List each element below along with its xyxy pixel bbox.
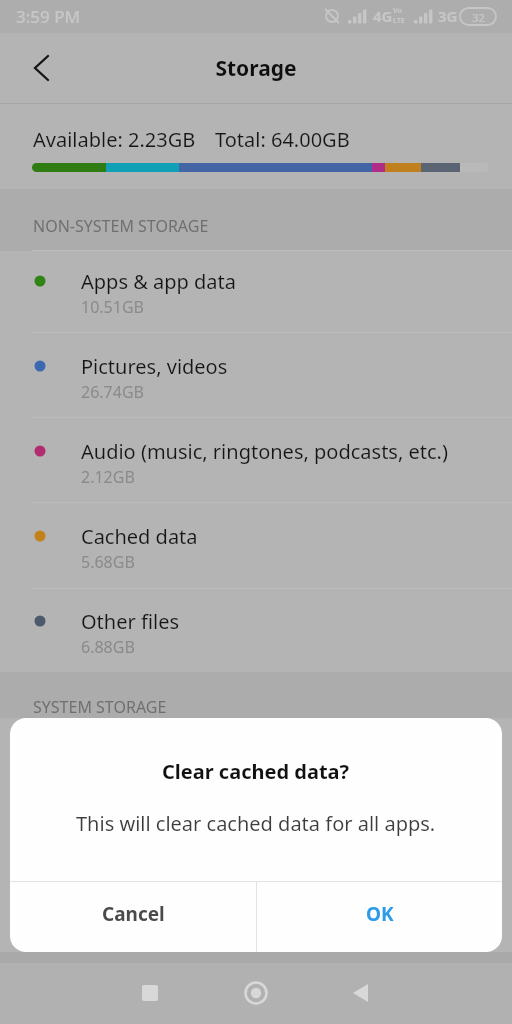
- staticText: Cached data: [81, 523, 198, 550]
- staticText: 4G: [373, 6, 393, 26]
- button[interactable]: Apps & app data: [0, 251, 512, 336]
- staticText: 2.12GB: [81, 466, 135, 488]
- button[interactable]: Cancel: [10, 879, 256, 949]
- staticText: Vo LTE: [393, 6, 405, 26]
- staticText: OK: [366, 901, 394, 927]
- staticText: 6.88GB: [81, 636, 135, 658]
- staticText: 5.68GB: [81, 551, 135, 573]
- button[interactable]: Cached data: [0, 506, 512, 591]
- staticText: Clear cached data?: [162, 758, 350, 785]
- staticText: 26.74GB: [81, 381, 144, 403]
- staticText: This will clear cached data for all apps…: [76, 810, 436, 837]
- staticText: SYSTEM STORAGE: [33, 696, 167, 718]
- staticText: Available: 2.23GB: [33, 126, 196, 153]
- button[interactable]: [336, 968, 386, 1018]
- button[interactable]: Audio (music, ringtones, podcasts, etc.): [0, 421, 512, 506]
- button[interactable]: Other files: [0, 591, 512, 676]
- staticText: Audio (music, ringtones, podcasts, etc.): [81, 438, 448, 465]
- staticText: Total: 64.00GB: [215, 126, 350, 153]
- staticText: Other files: [81, 608, 179, 635]
- button[interactable]: [231, 968, 281, 1018]
- staticText: 10.51GB: [81, 296, 144, 318]
- button[interactable]: Pictures, videos: [0, 336, 512, 421]
- staticText: Apps & app data: [81, 268, 236, 295]
- staticText: NON-SYSTEM STORAGE: [33, 215, 209, 237]
- staticText: 3G: [438, 6, 458, 26]
- staticText: 3:59 PM: [16, 5, 81, 28]
- staticText: Cancel: [102, 901, 165, 927]
- button[interactable]: [125, 968, 175, 1018]
- staticText: 32: [472, 10, 485, 25]
- staticText: Storage: [215, 54, 297, 83]
- button[interactable]: OK: [257, 879, 502, 949]
- staticText: Pictures, videos: [81, 353, 228, 380]
- button[interactable]: [0, 33, 512, 103]
